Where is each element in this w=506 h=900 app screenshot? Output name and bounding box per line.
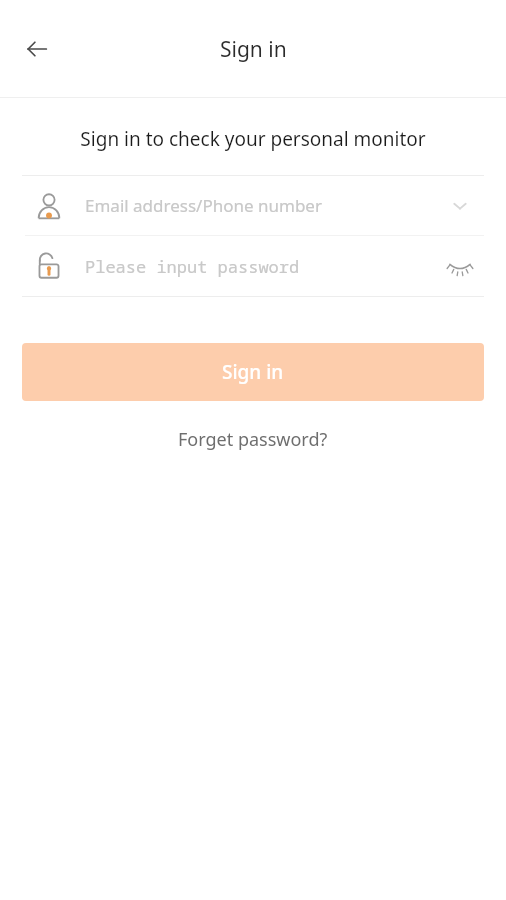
button[interactable]: Show account list xyxy=(440,186,480,226)
button[interactable]: Back xyxy=(14,26,60,72)
button[interactable]: Show password xyxy=(440,246,480,286)
staticText: Sign in xyxy=(220,35,287,64)
staticText: Sign in to check your personal monitor xyxy=(0,126,506,152)
staticText: Sign in xyxy=(222,359,284,385)
button[interactable]: Sign in xyxy=(22,343,484,401)
staticText: Email address/Phone number xyxy=(85,194,440,217)
button[interactable]: Email address/Phone number xyxy=(22,176,484,235)
button[interactable]: Please input password xyxy=(22,236,484,296)
staticText: Please input password xyxy=(85,255,440,278)
staticText: Forget password? xyxy=(178,427,328,452)
button[interactable]: Forget password? xyxy=(166,421,340,458)
